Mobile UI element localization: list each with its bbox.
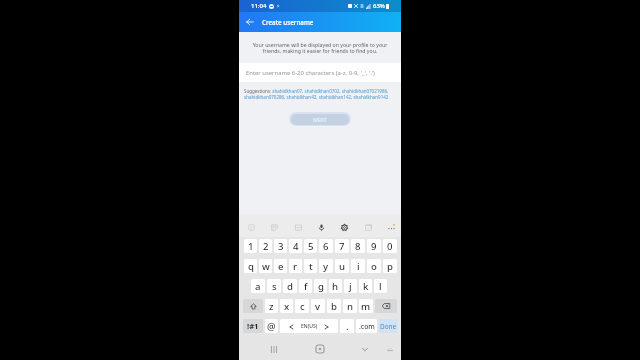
staticText: n [347,300,354,313]
button[interactable]: v [311,299,325,313]
button[interactable]: !#1 [243,319,263,333]
button[interactable]: Home [312,341,328,357]
staticText: Create username [262,18,314,27]
button[interactable]: u [335,259,349,273]
button[interactable]: 8 [351,239,365,253]
button[interactable]: 9 [367,239,381,253]
button[interactable]: 4 [289,239,302,253]
button[interactable]: NEXT [289,112,351,126]
staticText: 2 [263,240,269,253]
staticText: x [284,300,290,313]
button[interactable]: Clipboard [291,220,305,234]
staticText: 6 [323,240,329,253]
staticText: z [269,300,274,313]
button[interactable]: .com [356,319,377,333]
staticText: Done [380,322,397,331]
staticText: EN(US) [301,323,318,330]
button[interactable]: h [329,279,342,293]
button[interactable]: m [359,299,373,313]
staticText: 5 [308,240,314,253]
staticText: w [262,260,270,273]
button[interactable]: z [265,299,278,313]
button[interactable]: Back [357,341,373,357]
staticText: 11:04 [251,2,267,10]
button[interactable]: p [383,259,397,273]
button[interactable]: Hide keyboard [382,341,398,357]
button[interactable]: . [340,319,354,333]
button[interactable]: Recents [266,341,282,357]
button[interactable]: c [295,299,309,313]
staticText: Enter username 6-20 characters (a-z, 0-9… [246,69,375,77]
staticText: 1 [248,240,254,253]
staticText: l [379,280,382,293]
staticText: 8 [355,240,361,253]
staticText: q [248,260,254,273]
staticText: v [315,300,321,313]
button[interactable]: 2 [259,239,272,253]
staticText: b [331,300,337,313]
staticText: e [278,260,284,273]
button[interactable]: 0 [383,239,397,253]
staticText: g [318,280,324,293]
button[interactable]: Emoji [244,220,258,234]
button[interactable]: a [251,279,265,293]
button[interactable]: 6 [319,239,333,253]
staticText: a [255,280,261,293]
button[interactable]: i [351,259,365,273]
button[interactable]: k [359,279,372,293]
button[interactable]: 7 [335,239,349,253]
staticText: Your username will be displayed on your … [250,41,390,55]
staticText: r [293,260,298,273]
button[interactable]: Done [379,319,398,333]
staticText: i [357,260,360,273]
button[interactable]: Settings [337,220,351,234]
button[interactable]: f [299,279,312,293]
staticText: m [361,300,371,313]
button[interactable]: w [259,259,272,273]
staticText: c [300,300,305,313]
staticText: h [332,280,339,293]
staticText: t [309,260,313,273]
staticText: y [323,260,329,273]
button[interactable]: Translate [361,220,375,234]
button[interactable]: Stickers [267,220,281,234]
button[interactable]: d [283,279,297,293]
button[interactable]: 5 [304,239,317,253]
button[interactable]: x [280,299,293,313]
staticText: 4 [293,240,299,253]
staticText: 63% [373,2,385,10]
button[interactable]: Voice input [314,220,328,234]
staticText: 7 [339,240,345,253]
button[interactable]: o [367,259,381,273]
button[interactable]: l [374,279,387,293]
staticText: j [349,280,352,293]
button[interactable]: del [375,299,397,313]
staticText: 0 [387,240,393,253]
button[interactable]: g [314,279,327,293]
staticText: .com [359,322,375,331]
button[interactable]: Enter username 6-20 characters (a-z, 0-9… [239,63,401,82]
button[interactable]: q [244,259,257,273]
staticText: @ [267,320,276,333]
button[interactable]: t [304,259,317,273]
staticText: o [371,260,377,273]
button[interactable]: More options [384,220,398,234]
button[interactable]: 1 [244,239,257,253]
button[interactable]: b [327,299,341,313]
button[interactable]: r [289,259,302,273]
button[interactable]: @ [265,319,278,333]
button[interactable]: j [344,279,357,293]
button[interactable]: n [343,299,357,313]
button[interactable]: shift [243,299,263,313]
button[interactable]: e [274,259,287,273]
button[interactable]: Back [243,15,257,29]
staticText: . [346,320,349,333]
staticText: Suggestions: shahidkhan07, shahidkhan070… [244,88,398,100]
staticText: p [387,260,393,273]
button[interactable]: 3 [274,239,287,253]
button[interactable]: EN(US) [280,319,338,333]
button[interactable]: s [267,279,281,293]
staticText: k [363,280,369,293]
staticText: u [339,260,346,273]
button[interactable]: y [319,259,333,273]
